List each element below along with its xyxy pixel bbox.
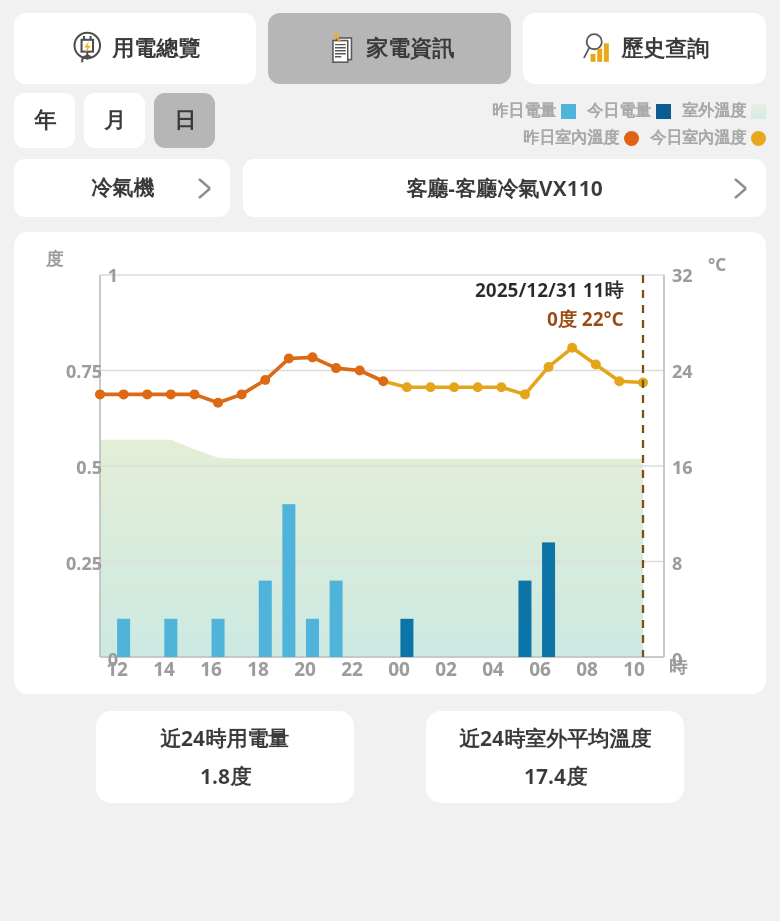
- staticText: 時: [669, 656, 687, 679]
- staticText: 08: [573, 656, 601, 682]
- staticText: 家電資訊: [366, 35, 454, 63]
- button[interactable]: 月: [84, 93, 145, 148]
- staticText: 14: [150, 656, 178, 682]
- staticText: 月: [104, 107, 126, 135]
- staticText: 客廳-客廳冷氣VX110: [406, 174, 603, 203]
- staticText: 0.5: [64, 455, 102, 480]
- staticText: 16: [197, 656, 225, 682]
- staticText: 昨日電量: [492, 101, 556, 121]
- staticText: 近24時室外平均溫度: [459, 724, 652, 753]
- staticText: 今日電量: [587, 101, 651, 121]
- staticText: 0度 22°C: [547, 306, 624, 332]
- staticText: 1.8度: [200, 762, 251, 791]
- staticText: 年: [34, 107, 56, 135]
- staticText: 17.4度: [524, 762, 587, 791]
- staticText: 12: [103, 656, 131, 682]
- staticText: 昨日室內溫度: [523, 128, 619, 148]
- button[interactable]: 家電資訊: [268, 13, 511, 84]
- staticText: 02: [432, 656, 460, 682]
- button[interactable]: 客廳-客廳冷氣VX110: [243, 159, 766, 217]
- staticText: 用電總覽: [112, 35, 200, 63]
- staticText: 0.25: [56, 551, 102, 576]
- staticText: 18: [244, 656, 272, 682]
- staticText: 日: [174, 107, 196, 135]
- button[interactable]: 近24時室外平均溫度: [426, 711, 684, 803]
- staticText: 32: [672, 263, 693, 288]
- staticText: °C: [708, 253, 727, 276]
- staticText: 10: [620, 656, 648, 682]
- staticText: 室外溫度: [682, 101, 746, 121]
- staticText: 24: [672, 359, 693, 384]
- staticText: 歷史查詢: [621, 35, 709, 63]
- staticText: 16: [672, 455, 693, 480]
- staticText: 0.75: [56, 359, 102, 384]
- staticText: 今日室內溫度: [650, 128, 746, 148]
- other: Select: [198, 178, 211, 199]
- button[interactable]: 近24時用電量: [96, 711, 354, 803]
- staticText: 20: [291, 656, 319, 682]
- other: Select: [734, 178, 747, 199]
- button[interactable]: 冷氣機: [14, 159, 230, 217]
- staticText: 1: [88, 263, 118, 288]
- staticText: 00: [385, 656, 413, 682]
- staticText: 度: [46, 249, 63, 270]
- button[interactable]: 用電總覽: [14, 13, 256, 84]
- staticText: 04: [479, 656, 507, 682]
- staticText: 22: [338, 656, 366, 682]
- button[interactable]: 日: [154, 93, 215, 148]
- staticText: 0: [672, 647, 683, 672]
- staticText: 06: [526, 656, 554, 682]
- staticText: 8: [672, 551, 683, 576]
- staticText: 近24時用電量: [160, 724, 290, 753]
- button[interactable]: 年: [14, 93, 75, 148]
- staticText: 2025/12/31 11時: [475, 277, 624, 303]
- staticText: 冷氣機: [91, 175, 154, 201]
- button[interactable]: 歷史查詢: [523, 13, 766, 84]
- staticText: 0: [88, 647, 118, 672]
